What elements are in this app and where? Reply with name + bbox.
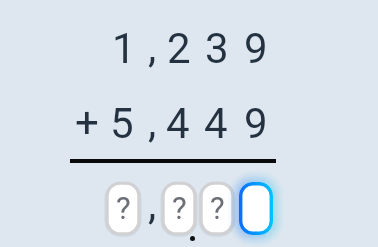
- staticText: 3: [205, 24, 229, 73]
- staticText: 4: [166, 99, 190, 148]
- button[interactable]: Empty answer digit: [162, 182, 196, 235]
- staticText: 2: [167, 24, 191, 73]
- staticText: +: [75, 98, 99, 147]
- staticText: ,: [148, 180, 157, 229]
- button[interactable]: Selected answer digit: [227, 170, 285, 247]
- staticText: ?: [172, 190, 187, 226]
- staticText: ,: [148, 23, 157, 72]
- staticText: ?: [210, 190, 225, 226]
- staticText: 9: [244, 99, 268, 148]
- staticText: ,: [148, 98, 157, 147]
- button[interactable]: Empty answer digit: [200, 182, 234, 235]
- staticText: ?: [116, 190, 131, 226]
- staticText: 5: [110, 99, 134, 148]
- staticText: 4: [204, 99, 228, 148]
- button[interactable]: Empty answer digit: [106, 182, 140, 235]
- staticText: 9: [244, 24, 268, 73]
- staticText: 1: [112, 24, 136, 73]
